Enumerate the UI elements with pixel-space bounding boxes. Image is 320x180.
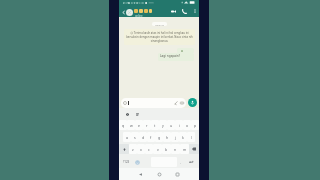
- staticText: t: [154, 123, 156, 128]
- button[interactable]: b: [162, 144, 171, 154]
- button[interactable]: Call: [180, 7, 189, 16]
- button[interactable]: online: [134, 5, 152, 17]
- staticText: v: [157, 147, 159, 152]
- button[interactable]: a: [123, 132, 131, 142]
- button[interactable]: c: [145, 144, 153, 154]
- button[interactable]: z: [129, 144, 137, 154]
- staticText: Lagi ngapain?: [160, 54, 181, 58]
- button[interactable]: r: [143, 120, 151, 130]
- staticText: n: [174, 147, 177, 152]
- staticText: e: [138, 123, 140, 128]
- button[interactable]: Recent apps: [173, 170, 182, 179]
- button[interactable]: n: [171, 144, 180, 154]
- button[interactable]: Contact photo: [126, 9, 133, 16]
- button[interactable]: u: [167, 120, 175, 130]
- button[interactable]: [177, 48, 194, 53]
- button[interactable]: Enter: [186, 157, 196, 167]
- staticText: x: [140, 147, 142, 152]
- button[interactable]: o: [183, 120, 191, 130]
- button[interactable]: j: [171, 132, 179, 142]
- staticText: b: [165, 147, 168, 152]
- button[interactable]: JUNE 15: [152, 22, 167, 26]
- button[interactable]: q: [119, 120, 127, 130]
- button[interactable]: s: [131, 132, 139, 142]
- button[interactable]: w: [127, 120, 135, 130]
- staticText: d: [142, 135, 145, 140]
- button[interactable]: h: [163, 132, 171, 142]
- button[interactable]: y: [159, 120, 167, 130]
- button[interactable]: Emoji: [133, 157, 142, 167]
- button[interactable]: ☺ Terima kasih atas ini hal ini hal ceng…: [124, 29, 195, 45]
- staticText: z: [132, 147, 134, 152]
- button[interactable]: i: [175, 120, 183, 130]
- staticText: r: [146, 123, 148, 128]
- staticText: o: [186, 123, 189, 128]
- button[interactable]: Lagi ngapain?: [158, 53, 194, 61]
- button[interactable]: Home: [155, 170, 164, 179]
- staticText: c: [148, 147, 150, 152]
- button[interactable]: p: [191, 120, 199, 130]
- button[interactable]: x: [137, 144, 145, 154]
- staticText: p: [194, 123, 197, 128]
- button[interactable]: m: [180, 144, 189, 154]
- button[interactable]: e: [135, 120, 143, 130]
- button[interactable]: k: [179, 132, 187, 142]
- button[interactable]: l: [187, 132, 195, 142]
- staticText: online: [135, 14, 143, 18]
- staticText: m: [183, 147, 187, 152]
- staticText: y: [162, 123, 164, 128]
- button[interactable]: g: [155, 132, 163, 142]
- staticText: i: [179, 123, 180, 128]
- staticText: a: [126, 135, 128, 140]
- staticText: u: [170, 123, 173, 128]
- button[interactable]: v: [153, 144, 162, 154]
- button[interactable]: ?123: [121, 157, 131, 167]
- staticText: l: [191, 135, 192, 140]
- staticText: f: [150, 135, 152, 140]
- button[interactable]: f: [147, 132, 155, 142]
- staticText: .: [180, 160, 181, 165]
- button[interactable]: Send voice message: [188, 98, 197, 107]
- button[interactable]: Keyboard settings: [125, 112, 130, 117]
- button[interactable]: Shift: [119, 144, 129, 154]
- staticText: h: [166, 135, 169, 140]
- staticText: ?123: [123, 160, 130, 164]
- staticText: s: [134, 135, 136, 140]
- button[interactable]: Back: [136, 170, 145, 179]
- staticText: g: [158, 135, 161, 140]
- button[interactable]: Video call: [169, 7, 178, 16]
- staticText: j: [175, 135, 176, 140]
- button[interactable]: [121, 98, 186, 108]
- staticText: ☺ Terima kasih atas ini hal ini hal ceng…: [126, 31, 193, 43]
- button[interactable]: Back: [120, 9, 126, 15]
- button[interactable]: d: [139, 132, 147, 142]
- button[interactable]: Stickers: [135, 112, 140, 117]
- button[interactable]: Backspace: [189, 144, 199, 154]
- button[interactable]: t: [151, 120, 159, 130]
- staticText: JUNE 15: [155, 23, 164, 26]
- staticText: w: [130, 123, 133, 128]
- button[interactable]: More options: [191, 7, 199, 15]
- staticText: q: [122, 123, 125, 128]
- staticText: k: [182, 135, 184, 140]
